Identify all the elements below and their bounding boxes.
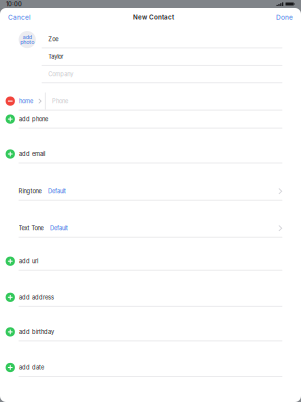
button[interactable]: Ringtone [0, 183, 301, 201]
staticText: add date [19, 364, 44, 371]
staticText: add birthday [19, 328, 54, 335]
staticText: Default [48, 188, 66, 195]
staticText: Text Tone [19, 225, 44, 232]
button[interactable]: add url [0, 253, 301, 271]
staticText: add address [19, 294, 54, 301]
button[interactable]: Cancel [8, 13, 31, 21]
staticText: Done [276, 13, 293, 21]
button[interactable]: add date [0, 359, 301, 377]
staticText: New Contact [133, 13, 174, 21]
staticText: Ringtone [19, 188, 42, 195]
staticText: photo [20, 39, 34, 45]
button[interactable]: add [19, 31, 36, 48]
staticText: Default [50, 225, 68, 232]
staticText: add phone [19, 116, 48, 122]
staticText: Phone [52, 98, 68, 104]
staticText: 10:00 [6, 0, 22, 8]
staticText: add [23, 34, 32, 40]
button[interactable]: home [0, 92, 301, 110]
staticText: Company [48, 71, 73, 77]
button[interactable]: Done [276, 13, 293, 21]
staticText: home [19, 98, 33, 104]
button[interactable]: Text Tone [0, 220, 301, 238]
button[interactable]: add birthday [0, 323, 301, 341]
staticText: Zoe [48, 36, 58, 43]
staticText: Taylor [48, 53, 63, 60]
button[interactable]: add address [0, 289, 301, 307]
staticText: add url [19, 258, 38, 265]
staticText: Cancel [8, 13, 31, 21]
button[interactable]: add phone [0, 110, 301, 128]
button[interactable]: add email [0, 145, 301, 163]
staticText: add email [19, 150, 45, 157]
